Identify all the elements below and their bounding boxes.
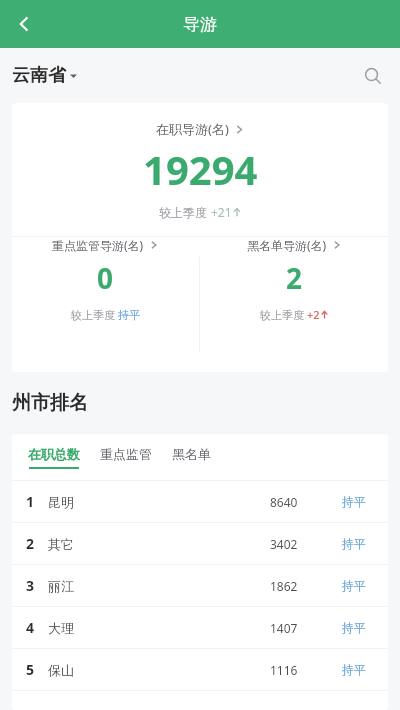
staticText: 2: [286, 259, 303, 297]
staticText: 1: [26, 492, 48, 511]
staticText: +2: [307, 307, 320, 322]
staticText: 较上季度: [71, 307, 118, 322]
button[interactable]: 黑名单导游(名): [200, 237, 388, 322]
button[interactable]: 3: [12, 565, 388, 606]
staticText: 持平: [118, 308, 140, 322]
staticText: 州市排名: [12, 391, 88, 415]
staticText: 云南省: [12, 64, 66, 87]
button[interactable]: 重点监管: [100, 446, 152, 469]
staticText: 在职总数: [28, 446, 80, 462]
staticText: 3402: [270, 536, 342, 552]
staticText: 丽江: [48, 578, 74, 594]
button[interactable]: 云南省: [12, 64, 77, 87]
staticText: 昆明: [48, 494, 74, 510]
button[interactable]: 5: [12, 649, 388, 690]
button[interactable]: 4: [12, 607, 388, 648]
staticText: 0: [97, 259, 114, 297]
staticText: 2: [26, 534, 48, 553]
staticText: 4: [26, 618, 48, 637]
staticText: 1407: [270, 620, 342, 636]
staticText: 导游: [183, 14, 217, 35]
staticText: 1862: [270, 578, 342, 594]
staticText: 在职导游(名): [156, 120, 229, 138]
button[interactable]: 黑名单: [172, 446, 211, 469]
staticText: 持平: [342, 620, 388, 635]
button[interactable]: Back: [6, 6, 42, 42]
button[interactable]: 在职总数: [28, 446, 80, 469]
staticText: 黑名单: [172, 446, 211, 462]
button[interactable]: 1: [12, 481, 388, 522]
staticText: 5: [26, 660, 48, 679]
staticText: 重点监管: [100, 446, 152, 462]
staticText: 较上季度: [159, 204, 211, 220]
staticText: 19294: [143, 142, 258, 196]
button[interactable]: Search: [356, 59, 390, 93]
staticText: 3: [26, 576, 48, 595]
staticText: 持平: [342, 662, 388, 677]
staticText: 持平: [342, 536, 388, 551]
staticText: 大理: [48, 620, 74, 636]
staticText: 保山: [48, 662, 74, 678]
staticText: 持平: [342, 578, 388, 593]
staticText: 黑名单导游(名): [247, 237, 327, 253]
button[interactable]: 在职导游(名): [12, 103, 388, 236]
staticText: 较上季度: [260, 307, 307, 322]
staticText: 其它: [48, 536, 74, 552]
staticText: 重点监管导游(名): [52, 237, 144, 253]
staticText: 8640: [270, 494, 342, 510]
staticText: +21: [211, 204, 232, 220]
button[interactable]: 重点监管导游(名): [12, 237, 199, 322]
staticText: 1116: [270, 662, 342, 678]
staticText: 持平: [342, 494, 388, 509]
button[interactable]: 2: [12, 523, 388, 564]
